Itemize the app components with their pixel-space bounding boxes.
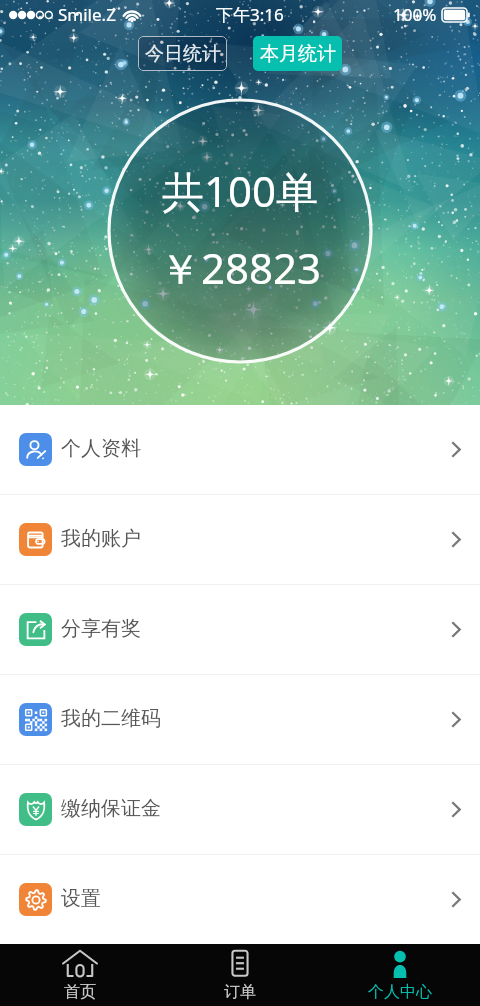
staticText: 首页 [64, 982, 96, 1002]
staticText: 100% [393, 3, 437, 26]
staticText: 今日统计 [145, 42, 221, 66]
staticText: 缴纳保证金 [61, 796, 161, 821]
staticText: ￥28823 [159, 239, 322, 296]
button[interactable]: 本月统计 [253, 36, 342, 71]
staticText: 本月统计 [260, 42, 336, 66]
staticText: 设置 [61, 886, 101, 911]
staticText: 我的二维码 [61, 706, 161, 731]
button[interactable]: 首页 [0, 944, 160, 1006]
staticText: 个人资料 [61, 436, 141, 461]
staticText: 个人中心 [368, 982, 432, 1002]
staticText: 共100单 [162, 162, 319, 219]
staticText: 订单 [224, 982, 256, 1002]
button[interactable]: 个人资料 [0, 405, 480, 494]
button[interactable]: 我的账户 [0, 495, 480, 584]
button[interactable]: 缴纳保证金 [0, 765, 480, 854]
staticText: 我的账户 [61, 526, 141, 551]
button[interactable]: 个人中心 [320, 944, 480, 1006]
staticText: Smile.Z [58, 3, 116, 26]
button[interactable]: 今日统计 [138, 36, 227, 71]
button[interactable]: 分享有奖 [0, 585, 480, 674]
staticText: 分享有奖 [61, 616, 141, 641]
button[interactable]: 订单 [160, 944, 320, 1006]
button[interactable]: 设置 [0, 855, 480, 944]
button[interactable]: 我的二维码 [0, 675, 480, 764]
staticText: 下午3:16 [216, 3, 284, 26]
